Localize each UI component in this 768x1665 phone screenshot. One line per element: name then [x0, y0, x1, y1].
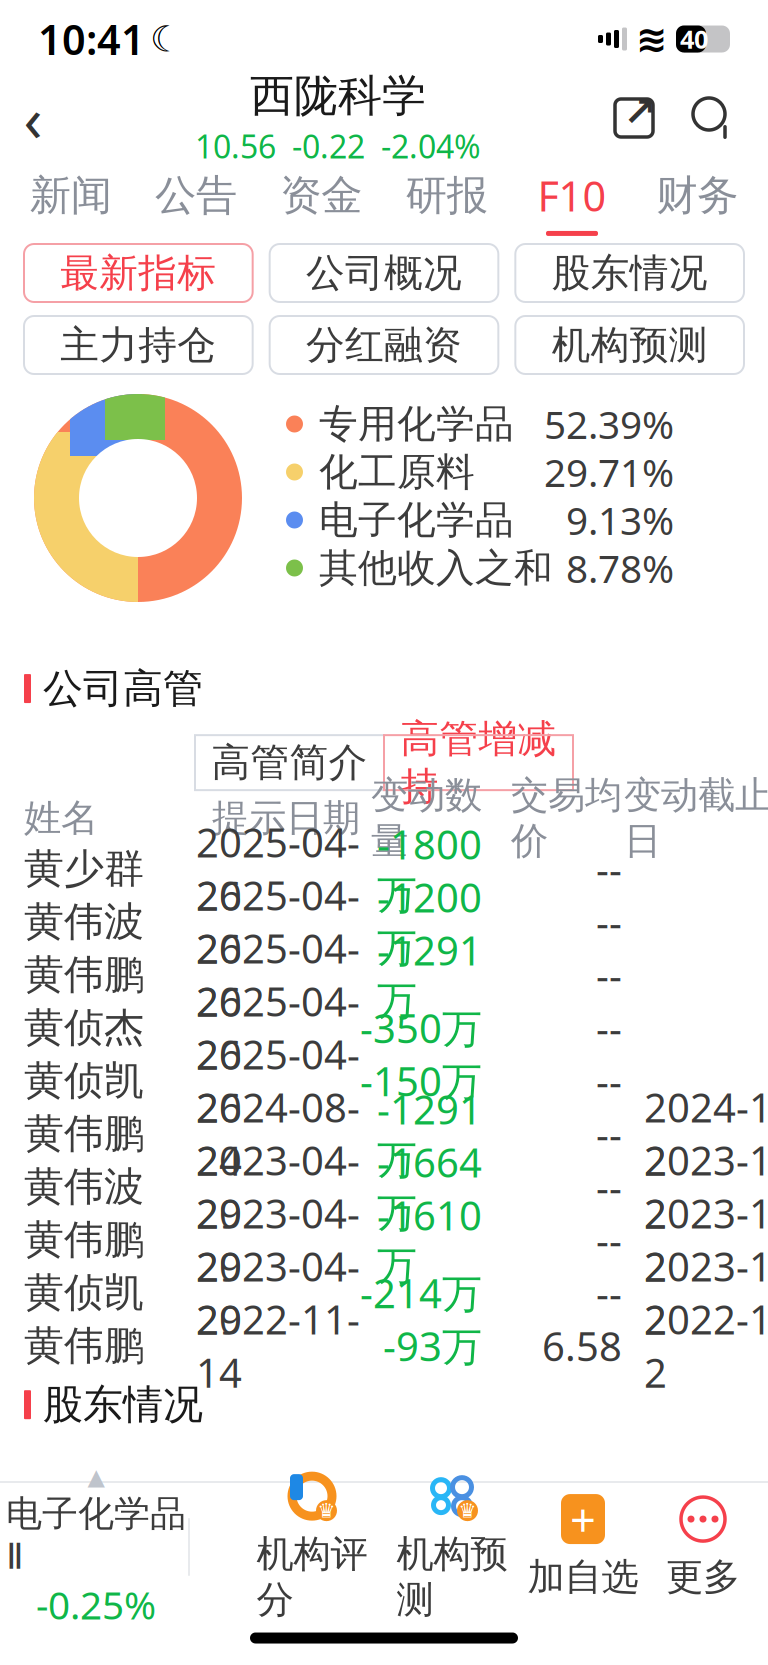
staticText: 变动截止日 [624, 772, 768, 864]
staticText: 其他收入之和 [319, 544, 553, 592]
staticText: 高管增减持 [400, 715, 556, 810]
staticText: 2025-04-26 [196, 974, 360, 1081]
staticText: 2022-11-14 [196, 1292, 360, 1399]
staticText: -1610万 [377, 1188, 482, 1291]
button[interactable]: 分享 [606, 90, 662, 146]
staticText: 52.39% [544, 398, 674, 450]
staticText: 10.56 -0.22 -2.04% [195, 125, 481, 167]
staticText: 2022-12 [644, 1292, 768, 1399]
button[interactable]: 高管增减持 [384, 735, 573, 790]
staticText: 黄伟波 [24, 1162, 144, 1211]
button[interactable]: 股东情况 [515, 244, 744, 302]
staticText: -350万 [360, 1001, 482, 1054]
staticText: 2025-04-26 [196, 868, 360, 975]
button[interactable]: ▲ [4, 1464, 188, 1630]
button[interactable]: 资金 [259, 166, 384, 238]
button[interactable]: 最新指标 [24, 244, 253, 302]
button[interactable]: 公告 [133, 166, 259, 238]
staticText: F10 [537, 168, 606, 223]
staticText: 机构预测 [552, 321, 708, 369]
staticText: 姓名 [24, 795, 98, 841]
staticText: 更多 [666, 1554, 740, 1600]
staticText: 专用化学品 [319, 400, 514, 448]
staticText: 提示日期 [212, 795, 360, 841]
staticText: 6.58 [542, 1319, 622, 1372]
staticText: 2023-04-29 [196, 1133, 360, 1240]
button[interactable]: 研报 [384, 166, 509, 238]
staticText: ☾ [150, 19, 182, 59]
button[interactable]: 分红融资 [270, 316, 498, 374]
button[interactable]: 主力持仓 [24, 316, 253, 374]
staticText: 机构预测 [396, 1531, 507, 1623]
staticText: 公司高管 [43, 664, 203, 713]
staticText: 资金 [280, 170, 362, 221]
staticText: ♛ [458, 1499, 476, 1522]
staticText: + [570, 1489, 596, 1549]
staticText: 股东情况 [43, 1380, 203, 1429]
button[interactable]: 财务 [635, 166, 760, 238]
staticText: -1800万 [377, 817, 482, 920]
button[interactable]: 新闻 [8, 166, 133, 238]
staticText: -- [596, 1054, 622, 1107]
staticText: 2023-12 [644, 1133, 768, 1240]
staticText: -- [596, 1213, 622, 1266]
button[interactable]: 高管简介 [195, 735, 384, 790]
staticText: 股东情况 [552, 249, 708, 297]
staticText: 财务 [656, 170, 738, 221]
staticText: -1200万 [377, 870, 482, 973]
staticText: -214万 [360, 1266, 482, 1319]
staticText: 高管简介 [211, 739, 367, 786]
staticText: 29.71% [544, 446, 674, 498]
staticText: 2025-04-26 [196, 1027, 360, 1134]
staticText: 研报 [406, 170, 488, 221]
staticText: -- [596, 895, 622, 948]
staticText: 40 [680, 22, 708, 56]
staticText: -- [596, 948, 622, 1001]
staticText: 电子化学品 [319, 496, 514, 544]
staticText: -- [596, 1001, 622, 1054]
button[interactable]: ♛ [242, 1471, 382, 1623]
staticText: 2024-12 [644, 1080, 768, 1187]
staticText: 2023-04-29 [196, 1239, 360, 1346]
staticText: ‹ [23, 77, 42, 159]
staticText: 加自选 [527, 1554, 638, 1600]
button[interactable]: 更多 [644, 1494, 762, 1600]
staticText: 黄伟鹏 [24, 1321, 144, 1370]
staticText: 黄侦杰 [24, 1003, 144, 1052]
staticText: 黄侦凯 [24, 1268, 144, 1317]
staticText: -- [596, 1160, 622, 1213]
staticText: 主力持仓 [60, 321, 216, 369]
button[interactable]: F10 [509, 166, 635, 238]
button[interactable]: 返回 [0, 81, 70, 155]
staticText: 分红融资 [306, 321, 462, 369]
button[interactable]: 机构预测 [515, 316, 744, 374]
button[interactable]: + [522, 1494, 644, 1600]
staticText: 黄伟鹏 [24, 950, 144, 999]
staticText: -0.25% [36, 1579, 156, 1630]
staticText: 机构评分 [256, 1531, 367, 1623]
button[interactable]: 公司概况 [270, 244, 498, 302]
staticText: 变动数量 [371, 772, 482, 864]
staticText: -93万 [383, 1319, 482, 1372]
staticText: -1291万 [377, 1082, 482, 1185]
staticText: 2023-04-29 [196, 1186, 360, 1293]
staticText: 8.78% [566, 542, 674, 594]
staticText: -1664万 [377, 1135, 482, 1238]
staticText: 黄伟鹏 [24, 1215, 144, 1264]
staticText: 2025-04-26 [196, 815, 360, 922]
staticText: 交易均价 [511, 772, 622, 864]
staticText: 最新指标 [60, 249, 216, 297]
staticText: 新闻 [30, 170, 112, 221]
button[interactable]: ♛ [382, 1471, 522, 1623]
staticText: 10:41 [38, 12, 145, 66]
staticText: 2025-04-26 [196, 921, 360, 1028]
staticText: 黄伟鹏 [24, 1109, 144, 1158]
button[interactable]: 搜索 [688, 93, 738, 143]
staticText: 公告 [155, 170, 237, 221]
staticText: 9.13% [566, 494, 674, 546]
staticText: -150万 [360, 1054, 482, 1107]
staticText: 2024-08-24 [196, 1080, 360, 1187]
staticText: 电子化学品Ⅱ [6, 1492, 186, 1577]
staticText: ♛ [317, 1499, 335, 1522]
staticText: -- [596, 1107, 622, 1160]
